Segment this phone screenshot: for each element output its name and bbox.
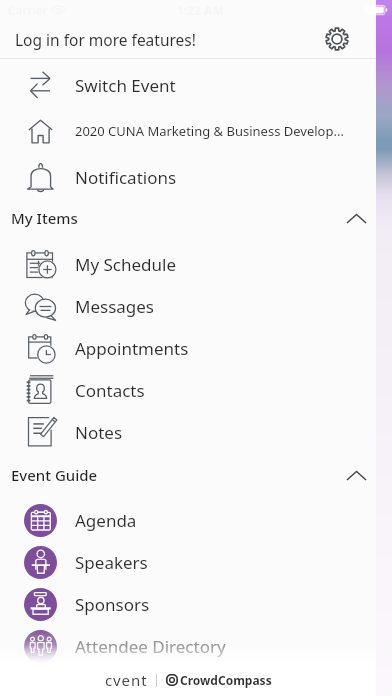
staticText: Notifications [75,166,177,189]
staticText: Agenda [75,509,137,532]
button[interactable]: Attendee Directory [0,625,376,667]
button[interactable]: Sponsors [0,583,376,625]
staticText: CrowdCompass [180,672,272,688]
staticText: 2020 CUNA Marketing & Business Develop..… [75,122,344,140]
button[interactable]: Speakers [0,541,376,583]
staticText: Event Guide [11,465,336,485]
staticText: Attendee Directory [75,635,226,658]
staticText: Contacts [75,379,145,402]
staticText: Appointments [75,337,189,360]
staticText: Log in for more features! [15,29,317,50]
button[interactable]: Notifications [0,154,376,200]
staticText: My Items [11,208,336,228]
button[interactable]: Settings [317,20,357,58]
button[interactable]: My Items [0,200,376,236]
button[interactable]: My Schedule [0,243,376,285]
staticText: cvent [105,670,148,690]
staticText: Notes [75,421,123,444]
button[interactable]: Messages [0,285,376,327]
staticText: Switch Event [75,74,176,97]
staticText: Messages [75,295,155,318]
staticText: Speakers [75,551,148,574]
button[interactable]: Agenda [0,499,376,541]
button[interactable]: Notes [0,411,376,453]
button[interactable]: Appointments [0,327,376,369]
staticText: My Schedule [75,253,177,276]
staticText: Sponsors [75,593,150,616]
button[interactable]: 2020 CUNA Marketing & Business Develop..… [0,108,376,154]
button[interactable]: Event Guide [0,453,376,497]
button[interactable]: Contacts [0,369,376,411]
button[interactable]: Switch Event [0,62,376,108]
